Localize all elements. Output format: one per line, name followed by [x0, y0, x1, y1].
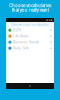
button[interactable]: IELTS [6, 27, 54, 33]
staticText: Daily Talk [13, 46, 29, 50]
staticText: IELTS [13, 28, 21, 32]
staticText: Choose vocabularies [9, 3, 51, 8]
staticText: Life Goals [13, 34, 29, 38]
staticText: Choose your vocabulary [11, 23, 49, 26]
staticText: that you really want [11, 8, 48, 13]
button[interactable]: Life Goals [6, 33, 54, 39]
staticText: Business Vocab [13, 40, 39, 44]
button[interactable]: Daily Talk [6, 45, 54, 51]
button[interactable]: Business Vocab [6, 39, 54, 45]
